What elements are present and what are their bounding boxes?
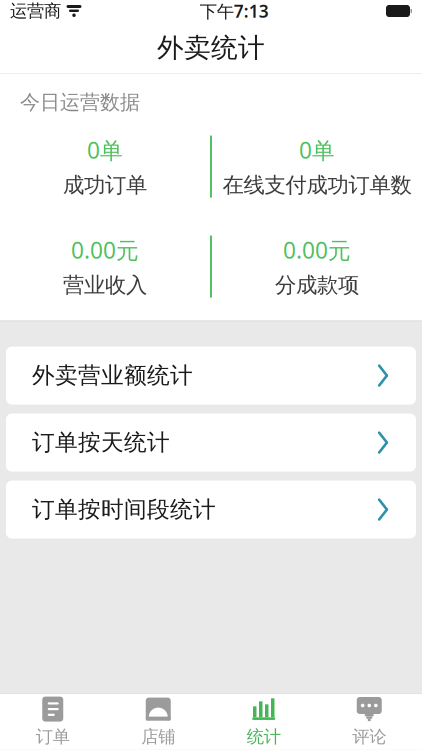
staticText: 外卖营业额统计: [32, 362, 193, 389]
button[interactable]: 订单按天统计: [6, 414, 416, 472]
staticText: 订单按时间段统计: [32, 496, 216, 523]
button[interactable]: 外卖营业额统计: [6, 347, 416, 405]
staticText: 订单按天统计: [32, 429, 170, 456]
staticText: 外卖统计: [157, 31, 265, 64]
staticText: 下午7:13: [200, 0, 269, 22]
button[interactable]: 店铺: [105, 694, 211, 750]
staticText: 在线支付成功订单数: [222, 172, 411, 198]
staticText: 0单: [87, 135, 123, 165]
staticText: 分成款项: [275, 272, 359, 298]
button[interactable]: 订单按时间段统计: [6, 481, 416, 539]
staticText: 0.00元: [283, 235, 351, 265]
staticText: 今日运营数据: [20, 90, 140, 115]
staticText: 店铺: [141, 726, 175, 747]
button[interactable]: 订单: [0, 694, 105, 750]
button[interactable]: 统计: [211, 694, 316, 750]
staticText: 成功订单: [63, 172, 147, 198]
staticText: 订单: [36, 726, 70, 747]
staticText: 统计: [247, 726, 281, 747]
staticText: 运营商: [10, 0, 61, 22]
staticText: 0.00元: [71, 235, 139, 265]
staticText: 评论: [352, 726, 386, 747]
staticText: 营业收入: [63, 272, 147, 298]
button[interactable]: 评论: [316, 694, 422, 750]
staticText: 0单: [299, 135, 335, 165]
